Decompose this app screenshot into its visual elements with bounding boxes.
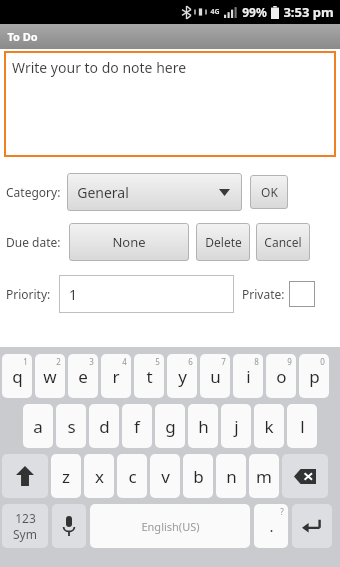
staticText: ? <box>280 506 284 517</box>
staticText: 3:53 pm <box>283 3 334 21</box>
button[interactable]: Write your to do note here <box>4 51 336 157</box>
button[interactable]: v <box>150 454 180 498</box>
staticText: k <box>264 415 274 438</box>
staticText: o <box>276 365 287 388</box>
staticText: 7 <box>221 356 226 367</box>
other: Battery <box>271 6 279 19</box>
button[interactable]: Enter <box>292 504 332 548</box>
staticText: t <box>146 365 153 388</box>
staticText: 4G <box>210 7 220 17</box>
staticText: Due date: <box>6 234 61 250</box>
staticText: Category: <box>6 184 61 200</box>
staticText: OK <box>261 184 278 200</box>
staticText: English(US) <box>141 519 200 534</box>
staticText: d <box>99 415 110 438</box>
button[interactable]: Delete <box>196 223 250 261</box>
staticText: Priority: <box>6 286 51 302</box>
staticText: 0 <box>320 356 325 367</box>
button[interactable]: General <box>67 173 242 211</box>
staticText: a <box>33 415 43 438</box>
staticText: s <box>67 415 76 438</box>
staticText: General <box>77 183 129 202</box>
button[interactable]: o <box>266 354 296 398</box>
staticText: w <box>43 365 57 388</box>
button[interactable]: g <box>155 404 185 448</box>
button[interactable]: OK <box>250 175 288 209</box>
staticText: Delete <box>205 234 242 250</box>
button[interactable]: w <box>35 354 65 398</box>
button[interactable]: t <box>134 354 164 398</box>
staticText: c <box>128 465 137 488</box>
staticText: Cancel <box>264 234 302 250</box>
button[interactable]: c <box>117 454 147 498</box>
button[interactable]: p <box>299 354 329 398</box>
staticText: 123 <box>15 510 36 526</box>
button[interactable]: 123 <box>2 504 48 548</box>
button[interactable]: Private checkbox <box>289 281 315 307</box>
staticText: . <box>269 516 274 536</box>
staticText: Private: <box>242 286 285 302</box>
staticText: 5 <box>155 356 160 367</box>
staticText: f <box>134 415 140 438</box>
button[interactable]: j <box>221 404 251 448</box>
staticText: g <box>165 415 176 438</box>
staticText: 4 <box>122 356 127 367</box>
staticText: b <box>193 465 204 488</box>
other: Bluetooth <box>182 6 191 19</box>
staticText: p <box>309 365 320 388</box>
staticText: 1 <box>23 356 28 367</box>
button[interactable]: Space <box>90 504 250 548</box>
staticText: l <box>300 415 305 438</box>
staticText: To Do <box>7 29 38 44</box>
button[interactable]: u <box>200 354 230 398</box>
button[interactable]: x <box>84 454 114 498</box>
button[interactable]: y <box>167 354 197 398</box>
staticText: 9 <box>287 356 292 367</box>
button[interactable]: d <box>89 404 119 448</box>
button[interactable]: . <box>254 504 288 548</box>
other: Signal <box>224 7 238 18</box>
staticText: z <box>62 465 70 488</box>
button[interactable]: Backspace <box>282 454 328 498</box>
button[interactable]: Cancel <box>256 223 310 261</box>
button[interactable]: i <box>233 354 263 398</box>
staticText: 6 <box>188 356 193 367</box>
button[interactable]: b <box>183 454 213 498</box>
staticText: 8 <box>254 356 259 367</box>
button[interactable]: Shift <box>2 454 48 498</box>
staticText: n <box>226 465 237 488</box>
staticText: 1 <box>69 285 78 304</box>
staticText: 99% <box>242 4 267 20</box>
button[interactable]: a <box>23 404 53 448</box>
staticText: i <box>246 365 251 388</box>
staticText: Sym <box>13 526 37 542</box>
button[interactable]: 1 <box>59 275 234 313</box>
staticText: r <box>112 365 120 388</box>
button[interactable]: z <box>51 454 81 498</box>
button[interactable]: Voice input <box>52 504 86 548</box>
staticText: q <box>12 365 23 388</box>
staticText: y <box>178 365 187 388</box>
button[interactable]: None <box>69 223 189 261</box>
staticText: None <box>112 233 146 251</box>
button[interactable]: l <box>287 404 317 448</box>
button[interactable]: f <box>122 404 152 448</box>
other: Vibrate <box>195 6 206 18</box>
staticText: j <box>234 415 239 438</box>
staticText: 3 <box>89 356 94 367</box>
button[interactable]: r <box>101 354 131 398</box>
staticText: 2 <box>56 356 61 367</box>
button[interactable]: n <box>216 454 246 498</box>
staticText: u <box>210 365 221 388</box>
staticText: m <box>256 465 272 488</box>
button[interactable]: q <box>2 354 32 398</box>
button[interactable]: m <box>249 454 279 498</box>
staticText: x <box>95 465 104 488</box>
staticText: e <box>78 365 88 388</box>
staticText: h <box>198 415 209 438</box>
button[interactable]: h <box>188 404 218 448</box>
staticText: v <box>161 465 170 488</box>
button[interactable]: s <box>56 404 86 448</box>
button[interactable]: e <box>68 354 98 398</box>
button[interactable]: k <box>254 404 284 448</box>
